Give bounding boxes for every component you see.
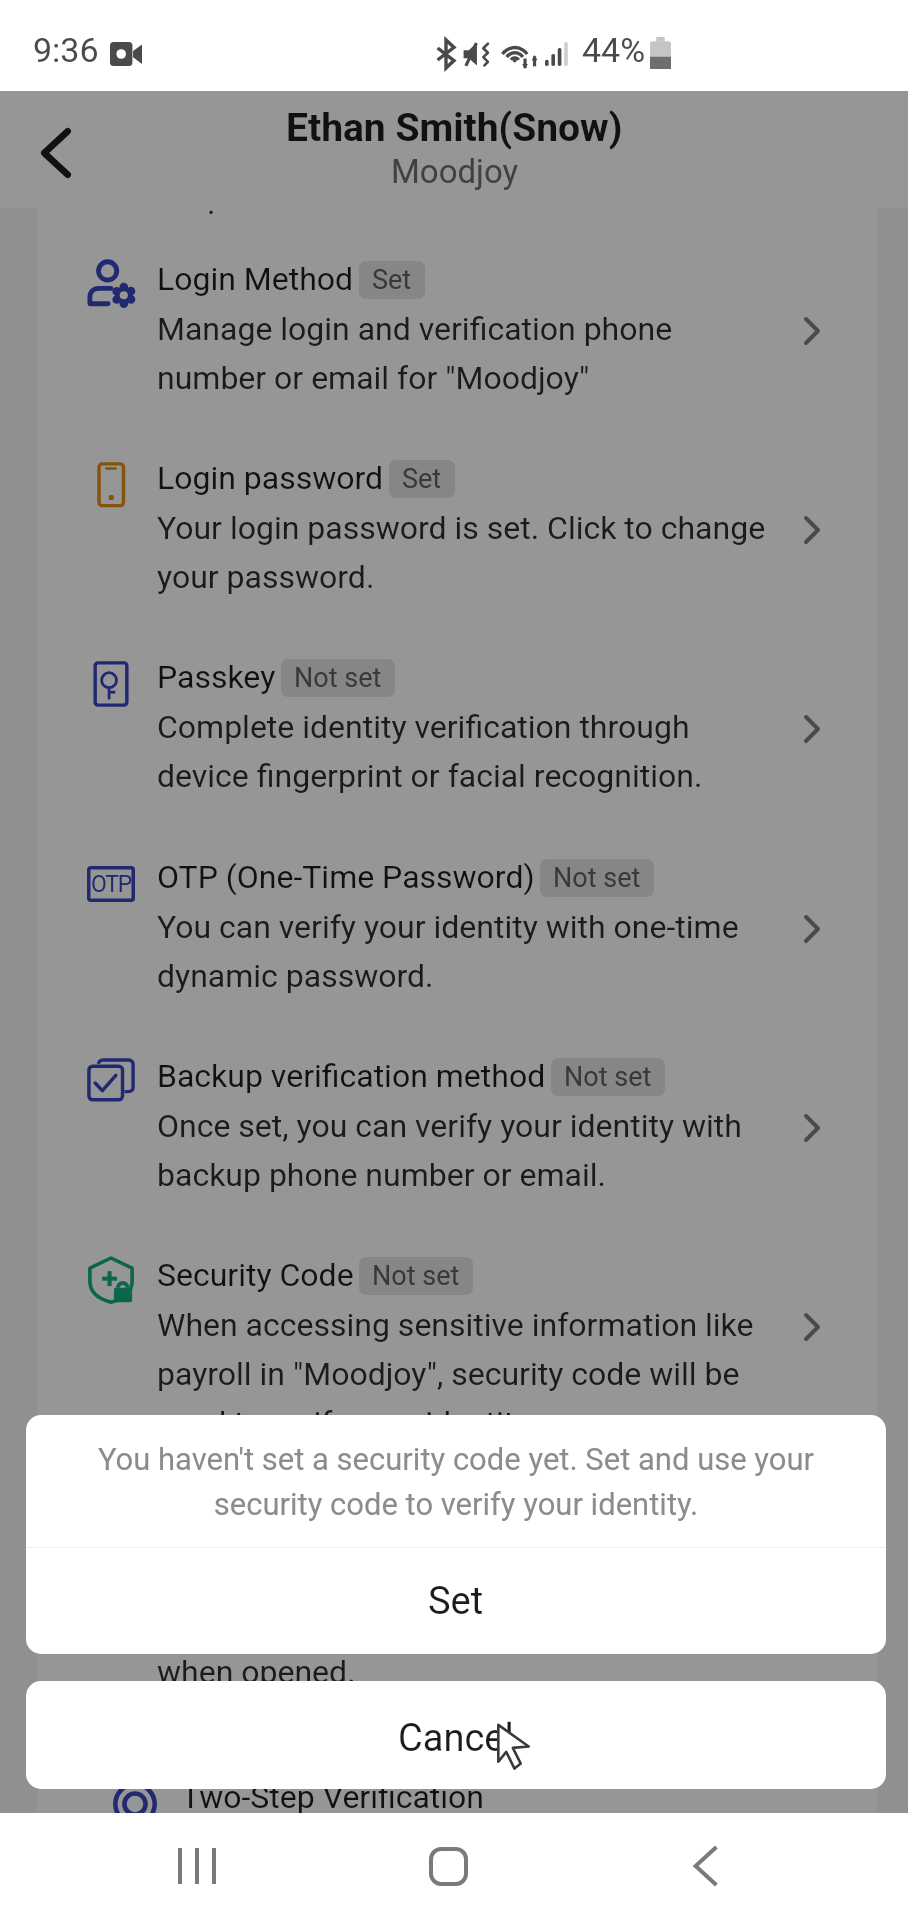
button[interactable]: Cancel (26, 1681, 886, 1789)
button[interactable]: Recents (147, 1816, 247, 1916)
staticText: You can verify your identity with one-ti… (157, 908, 739, 946)
button[interactable]: Set (26, 1548, 886, 1654)
button[interactable]: Login password (37, 449, 877, 648)
staticText: device fingerprint or facial recognition… (157, 757, 703, 795)
staticText: Ethan Smith(Snow) (286, 105, 623, 151)
staticText: Once set, you can verify your identity w… (157, 1107, 742, 1145)
staticText: used to verify your identity. (157, 1404, 537, 1442)
staticText: Screenshot Protection (157, 1505, 474, 1543)
button[interactable]: Back (14, 111, 98, 195)
staticText: Manage login and verification phone (157, 310, 673, 348)
staticText: You haven't set a security code yet. Set… (52, 1441, 860, 1522)
staticText: automatically, and cannot be captured (157, 1604, 698, 1642)
staticText: Your login password is set. Click to cha… (157, 509, 766, 547)
staticText: Security Code (157, 1256, 354, 1294)
staticText: number or email for "Moodjoy" (157, 359, 590, 397)
staticText: Backup verification method (157, 1057, 546, 1095)
button[interactable]: Back (656, 1816, 756, 1916)
staticText: OTP (One-Time Password) (157, 858, 535, 896)
button[interactable]: Security Code (37, 1246, 877, 1445)
staticText: When accessing sensitive information lik… (157, 1306, 754, 1344)
staticText: backup phone number or email. (157, 1156, 606, 1194)
button[interactable]: Login Method (37, 250, 877, 449)
staticText: Two-Step Verification (181, 1778, 485, 1816)
staticText: Login Method (157, 260, 354, 298)
staticText: OTP (91, 871, 132, 898)
staticText: payroll in "Moodjoy", security code will… (157, 1355, 740, 1393)
button[interactable]: Two-Step Verification (37, 1768, 877, 1920)
staticText: Not set (372, 1260, 460, 1292)
button[interactable]: Backup verification method (37, 1047, 877, 1246)
staticText: Passkey (157, 658, 276, 696)
button[interactable]: Passkey (37, 648, 877, 847)
staticText: . (207, 184, 216, 222)
staticText: Not set (564, 1061, 652, 1093)
staticText: Cancel (398, 1716, 514, 1761)
button[interactable]: OTP (37, 848, 877, 1047)
staticText: When enabled, content will be obscured (157, 1555, 720, 1593)
staticText: dynamic password. (157, 957, 434, 995)
staticText: Set (428, 1579, 484, 1624)
staticText: Set (372, 264, 412, 296)
staticText: Set (402, 463, 442, 495)
staticText: Not set (294, 662, 382, 694)
staticText: Moodjoy (391, 152, 519, 191)
staticText: 9:36 (33, 30, 99, 70)
button[interactable]: Screenshot Protection (37, 1495, 877, 1694)
staticText: when opened. (157, 1653, 356, 1691)
staticText: Not set (553, 862, 641, 894)
staticText: Login password (157, 459, 384, 497)
staticText: Complete identity verification through (157, 708, 690, 746)
staticText: 44% (582, 30, 646, 70)
button[interactable]: Home (398, 1816, 498, 1916)
staticText: your password. (157, 558, 375, 596)
